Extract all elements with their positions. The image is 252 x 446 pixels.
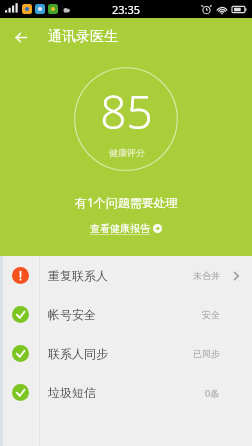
button[interactable]: 查看健康报告 <box>86 221 166 236</box>
staticText: 85 <box>100 80 153 143</box>
staticText: 0条 <box>205 387 220 399</box>
button[interactable]: 垃圾短信 <box>0 373 252 412</box>
staticText: 通讯录医生 <box>48 28 118 46</box>
other: Open <box>228 268 244 284</box>
button[interactable]: 帐号安全 <box>0 295 252 334</box>
button[interactable]: 重复联系人 <box>0 256 252 295</box>
button[interactable]: 联系人同步 <box>0 334 252 373</box>
staticText: 垃圾短信 <box>48 385 96 400</box>
staticText: 有1个问题需要处理 <box>75 194 178 210</box>
staticText: 未合并 <box>193 270 220 281</box>
staticText: 联系人同步 <box>48 346 108 361</box>
staticText: 23:35 <box>112 2 141 17</box>
staticText: 健康评分 <box>109 147 145 158</box>
staticText: 重复联系人 <box>48 268 108 283</box>
staticText: 查看健康报告 <box>90 222 150 235</box>
staticText: 已同步 <box>193 348 220 359</box>
staticText: 帐号安全 <box>48 307 96 322</box>
button[interactable]: Back <box>0 18 38 56</box>
staticText: 安全 <box>202 309 220 320</box>
